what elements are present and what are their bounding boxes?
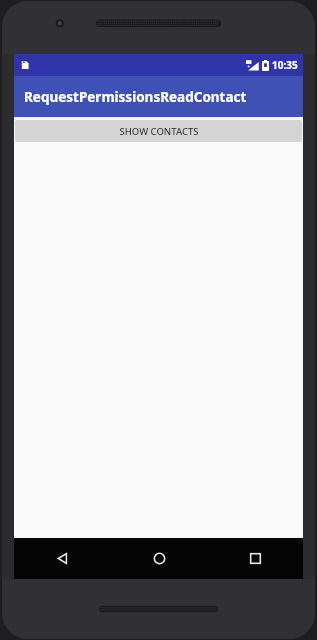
button[interactable]: Home <box>111 538 207 579</box>
button[interactable]: Back <box>14 538 111 579</box>
staticText: RequestPermissionsReadContact <box>24 88 247 106</box>
button[interactable]: SHOW CONTACTS <box>15 120 302 142</box>
button[interactable]: Recent apps <box>207 538 303 579</box>
staticText: SHOW CONTACTS <box>119 125 199 138</box>
staticText: 10:35 <box>272 58 298 72</box>
